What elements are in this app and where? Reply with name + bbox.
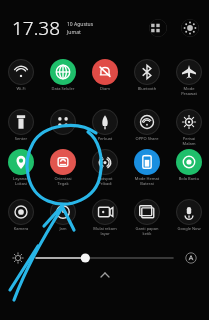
staticText: Senter: [1, 136, 41, 141]
staticText: Diam: [85, 86, 125, 91]
button[interactable]: Wi-Fi: [1, 58, 41, 98]
staticText: Jam: [43, 226, 83, 231]
staticText: Jumat: [67, 29, 81, 36]
staticText: Mode Hemat Baterai: [127, 176, 167, 186]
staticText: 10 Agustus: [67, 21, 94, 28]
button[interactable]: OPPO Share: [127, 108, 167, 148]
staticText: OPPO Share: [127, 136, 167, 141]
staticText: Google Now: [169, 226, 209, 231]
button[interactable]: Mulai rekam layar: [85, 198, 125, 238]
staticText: Perkuat: [85, 136, 125, 141]
button[interactable]: Orientasi Tegak: [43, 148, 83, 188]
staticText: Mode Pesawat: [169, 86, 209, 96]
staticText: Orientasi Tegak: [43, 176, 83, 186]
button[interactable]: Ganti papan ketik: [127, 198, 167, 238]
staticText: Ganti papan ketik: [127, 226, 167, 236]
button[interactable]: Hotspot Pribadi: [85, 148, 125, 188]
button[interactable]: Brightness: [6, 247, 203, 269]
button[interactable]: Settings: [181, 19, 199, 37]
staticText: Perisai Malam: [169, 136, 209, 146]
button[interactable]: Perisai Malam: [169, 108, 209, 148]
staticText: Wi-Fi: [1, 86, 41, 91]
button[interactable]: Bluetooth: [127, 58, 167, 98]
button[interactable]: Quick setting: [43, 108, 83, 148]
button[interactable]: Bola Bantu: [169, 148, 209, 188]
button[interactable]: Google Now: [169, 198, 209, 238]
button[interactable]: Jam: [43, 198, 83, 238]
button[interactable]: Mode Pesawat: [169, 58, 209, 98]
staticText: Bluetooth: [127, 86, 167, 91]
staticText: Layanan Lokasi: [1, 176, 41, 186]
button[interactable]: Collapse: [94, 268, 116, 282]
button[interactable]: Perkuat: [85, 108, 125, 148]
staticText: Mulai rekam layar: [85, 226, 125, 236]
button[interactable]: Layanan Lokasi: [1, 148, 41, 188]
staticText: 17.38: [12, 15, 61, 41]
staticText: Bola Bantu: [169, 176, 209, 181]
staticText: Hotspot Pribadi: [85, 176, 125, 186]
button[interactable]: Mode Hemat Baterai: [127, 148, 167, 188]
button[interactable]: Data Seluler: [43, 58, 83, 98]
button[interactable]: Edit quick settings: [149, 19, 167, 37]
button[interactable]: Senter: [1, 108, 41, 148]
button[interactable]: Kamera: [1, 198, 41, 238]
staticText: Data Seluler: [43, 86, 83, 91]
button[interactable]: Diam: [85, 58, 125, 98]
staticText: Kamera: [1, 226, 41, 231]
